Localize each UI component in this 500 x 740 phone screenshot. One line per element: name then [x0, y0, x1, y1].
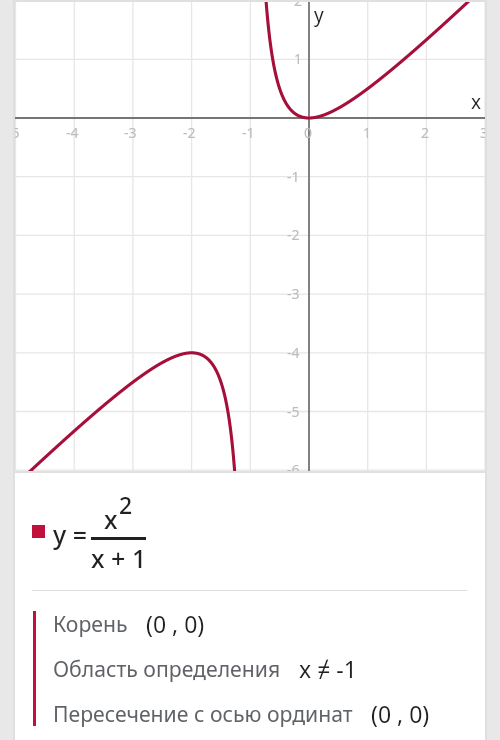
- button[interactable]: Пересечение с осью ординат: [53, 691, 500, 736]
- staticText: 2: [294, 0, 303, 10]
- button[interactable]: Graph of y = x squared over x plus 1: [15, 0, 485, 471]
- staticText: x + 1: [91, 541, 147, 575]
- staticText: -1: [287, 167, 300, 186]
- staticText: -6: [287, 460, 300, 471]
- button[interactable]: Область определения: [53, 646, 500, 691]
- staticText: -5: [287, 402, 300, 421]
- staticText: 1: [294, 49, 303, 68]
- button[interactable]: Function y equals x squared divided by x…: [15, 473, 485, 590]
- staticText: 2: [119, 489, 133, 520]
- staticText: 2: [421, 123, 430, 142]
- staticText: Область определения: [53, 654, 281, 683]
- staticText: 1: [363, 123, 372, 142]
- staticText: x: [104, 502, 118, 536]
- staticText: Пересечение с осью ординат: [53, 699, 353, 728]
- staticText: -2: [183, 123, 196, 142]
- staticText: -1: [242, 123, 255, 142]
- staticText: 0: [304, 123, 313, 142]
- staticText: Корень: [53, 609, 128, 638]
- staticText: y =: [53, 517, 88, 551]
- staticText: -3: [287, 284, 300, 303]
- staticText: -4: [66, 123, 79, 142]
- staticText: x: [471, 89, 482, 115]
- staticText: -5: [15, 123, 20, 142]
- staticText: 3: [480, 123, 485, 142]
- staticText: y: [314, 2, 324, 28]
- staticText: -2: [287, 225, 300, 244]
- staticText: -3: [124, 123, 137, 142]
- staticText: -4: [287, 343, 300, 362]
- staticText: (0 , 0): [371, 698, 430, 729]
- button[interactable]: Корень: [53, 601, 500, 646]
- staticText: (0 , 0): [146, 608, 205, 639]
- staticText: x ≠ -1: [299, 653, 357, 684]
